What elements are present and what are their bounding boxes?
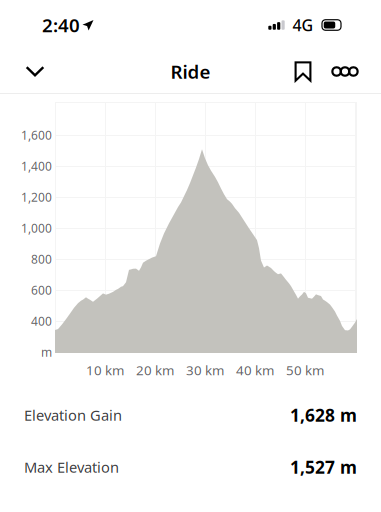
staticText: 4G xyxy=(292,14,313,36)
staticText: 1,400 xyxy=(21,158,52,174)
staticText: 1,000 xyxy=(21,220,52,236)
staticText: 50 km xyxy=(286,361,324,379)
staticText: 20 km xyxy=(136,361,174,379)
staticText: 1,527 m xyxy=(290,455,357,478)
staticText: 1,200 xyxy=(21,189,52,205)
staticText: 10 km xyxy=(86,361,124,379)
staticText: 600 xyxy=(31,282,52,298)
staticText: 30 km xyxy=(186,361,224,379)
button[interactable]: Max Elevation xyxy=(0,441,381,493)
staticText: Max Elevation xyxy=(24,457,119,477)
button[interactable]: Elevation Gain xyxy=(0,389,381,441)
button[interactable]: Bookmark xyxy=(282,50,324,93)
staticText: m xyxy=(41,344,52,360)
staticText: Elevation Gain xyxy=(24,405,122,425)
button[interactable]: More options xyxy=(324,50,366,93)
staticText: Ride xyxy=(170,59,210,84)
staticText: 40 km xyxy=(236,361,274,379)
button[interactable]: Collapse xyxy=(13,50,57,93)
staticText: 800 xyxy=(31,251,52,267)
staticText: 1,628 m xyxy=(290,403,357,426)
staticText: 1,600 xyxy=(21,127,52,143)
staticText: 2:40 xyxy=(42,13,80,37)
staticText: 400 xyxy=(31,313,52,329)
